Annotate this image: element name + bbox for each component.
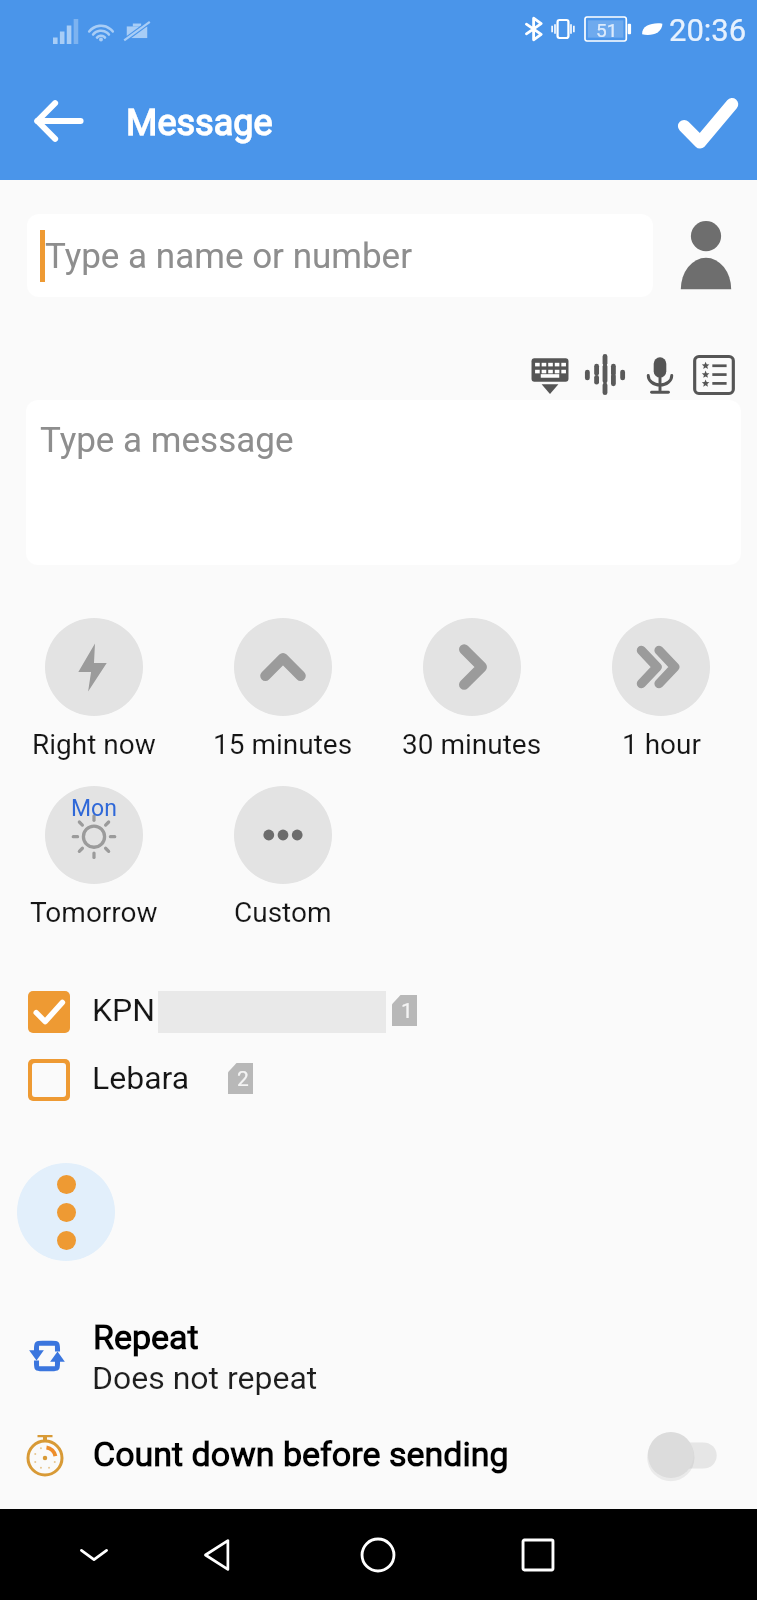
staticText: Type a name or number (45, 236, 413, 277)
staticText: 2 (237, 1067, 249, 1092)
button[interactable]: Keyboard (525, 350, 575, 400)
staticText: 20:36 (669, 12, 747, 48)
staticText: Lebara (92, 1059, 190, 1097)
staticText: Right now (32, 728, 156, 761)
button[interactable]: More options (17, 1163, 115, 1261)
staticText: Mon (71, 795, 117, 822)
staticText: Does not repeat (92, 1359, 318, 1397)
staticText: Type a message (40, 420, 294, 461)
button[interactable]: Type a name or number (27, 214, 653, 297)
button[interactable]: 1 hour (567, 618, 755, 766)
button[interactable]: Lebara (0, 1046, 757, 1114)
staticText: Count down before sending (93, 1434, 509, 1474)
button[interactable]: Right now (0, 618, 188, 766)
staticText: Tomorrow (30, 896, 158, 929)
button[interactable]: Voice input (635, 350, 685, 400)
button[interactable]: Templates (689, 350, 739, 400)
button[interactable]: Count down before sending (0, 1415, 757, 1493)
button[interactable]: Choose contact (668, 212, 744, 298)
button[interactable]: Home (322, 1509, 434, 1600)
staticText: 51 (596, 19, 618, 41)
button[interactable]: Back (0, 62, 116, 180)
staticText: 1 hour (622, 728, 701, 761)
staticText: Message (126, 102, 273, 144)
button[interactable]: Recents (482, 1509, 594, 1600)
button[interactable]: Hide keyboard (38, 1509, 150, 1600)
staticText: 30 minutes (402, 728, 542, 761)
button[interactable]: Back (161, 1509, 273, 1600)
button[interactable]: Tomorrow (0, 786, 188, 934)
button[interactable]: Repeat (0, 1305, 757, 1400)
button[interactable]: KPN (0, 978, 757, 1046)
button[interactable]: Custom (189, 786, 377, 934)
staticText: Custom (234, 896, 332, 929)
button[interactable]: 15 minutes (189, 618, 377, 766)
staticText: Repeat (93, 1317, 199, 1357)
staticText: 1 (401, 999, 413, 1024)
staticText: KPN (92, 991, 156, 1029)
button[interactable]: 30 minutes (378, 618, 566, 766)
button[interactable]: Done (648, 62, 757, 180)
staticText: 15 minutes (213, 728, 353, 761)
button[interactable]: Type a message (26, 400, 741, 565)
button[interactable]: Google voice typing (580, 350, 630, 400)
